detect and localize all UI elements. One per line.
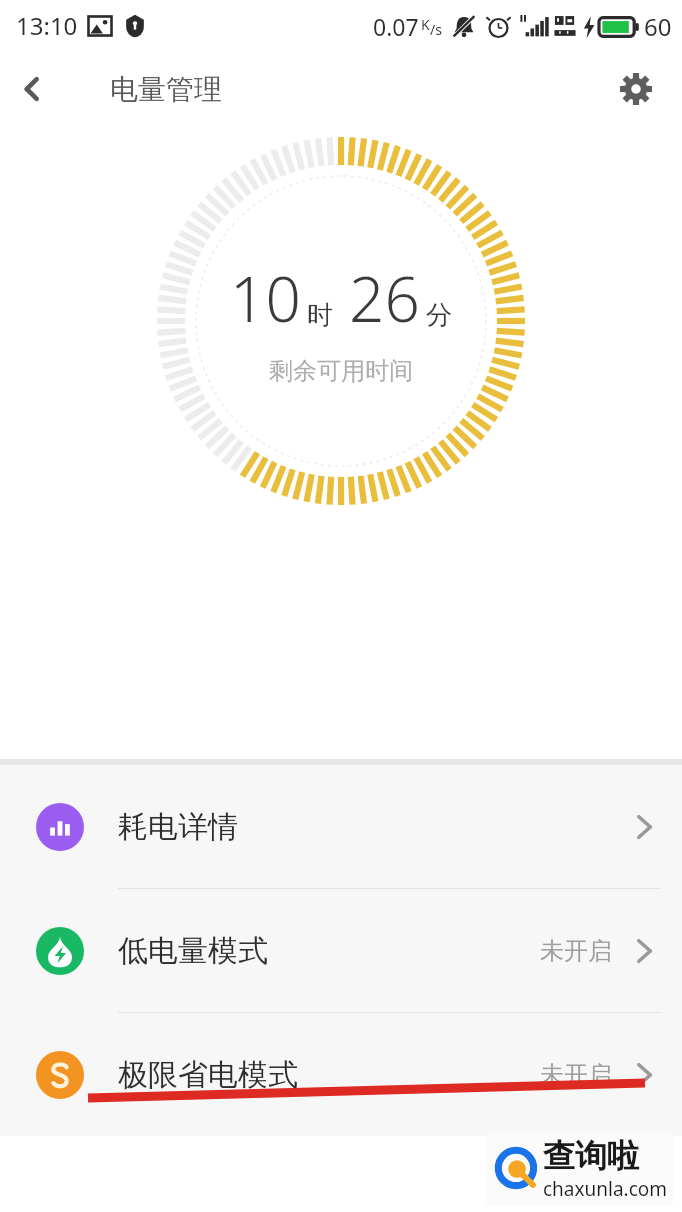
staticText: 未开启 xyxy=(540,936,612,966)
button[interactable]: Back xyxy=(0,57,64,121)
staticText: 分 xyxy=(426,299,452,332)
staticText: 查询啦 xyxy=(543,1136,639,1176)
button[interactable]: Settings xyxy=(606,59,666,119)
staticText: 10 xyxy=(230,256,301,340)
staticText: 电量管理 xyxy=(110,72,222,107)
staticText: 时 xyxy=(307,299,333,332)
staticText: chaxunla.com xyxy=(543,1176,668,1202)
staticText: K xyxy=(421,15,430,34)
button[interactable]: 低电量模式 xyxy=(0,889,682,1012)
staticText: 0.07 xyxy=(373,11,419,42)
staticText: 60 xyxy=(644,10,672,43)
staticText: 低电量模式 xyxy=(118,932,268,970)
staticText: 26 xyxy=(349,256,420,340)
button[interactable]: 极限省电模式 xyxy=(0,1013,682,1136)
staticText: 耗电详情 xyxy=(118,808,238,846)
staticText: 剩余可用时间 xyxy=(269,356,413,386)
staticText: 极限省电模式 xyxy=(118,1056,298,1094)
staticText: 未开启 xyxy=(540,1060,612,1090)
button[interactable]: 耗电详情 xyxy=(0,765,682,888)
staticText: 13:10 xyxy=(16,9,78,42)
staticText: /s xyxy=(430,20,442,39)
